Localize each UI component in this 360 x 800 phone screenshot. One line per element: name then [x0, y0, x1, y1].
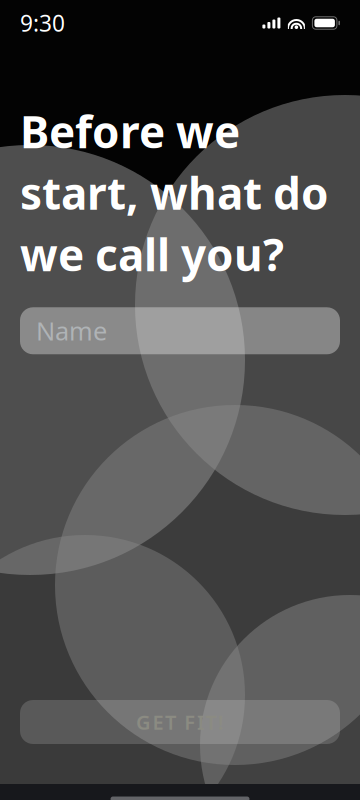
staticText: Name	[36, 314, 107, 348]
button[interactable]: GET FIT!	[20, 700, 340, 744]
staticText: GET FIT!	[136, 709, 224, 735]
button[interactable]: Name	[20, 307, 340, 354]
staticText: 9:30	[20, 8, 65, 38]
staticText: Before we start, what do we call you?	[20, 102, 329, 283]
